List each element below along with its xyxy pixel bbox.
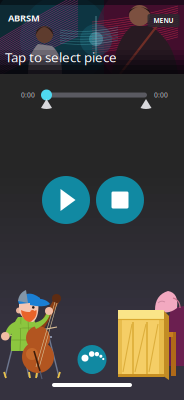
staticText: MENU <box>153 16 173 25</box>
button[interactable]: MENU <box>147 14 179 27</box>
button[interactable]: ABRSM <box>8 12 48 24</box>
staticText: Tap to select piece <box>5 48 117 66</box>
button[interactable]: Stop <box>96 176 144 224</box>
staticText: 0:00 <box>154 91 168 99</box>
button[interactable]: Play <box>42 176 90 224</box>
staticText: ABRSM <box>8 12 40 24</box>
button[interactable]: Tap to select piece <box>5 50 145 64</box>
staticText: 0:00 <box>21 91 35 99</box>
